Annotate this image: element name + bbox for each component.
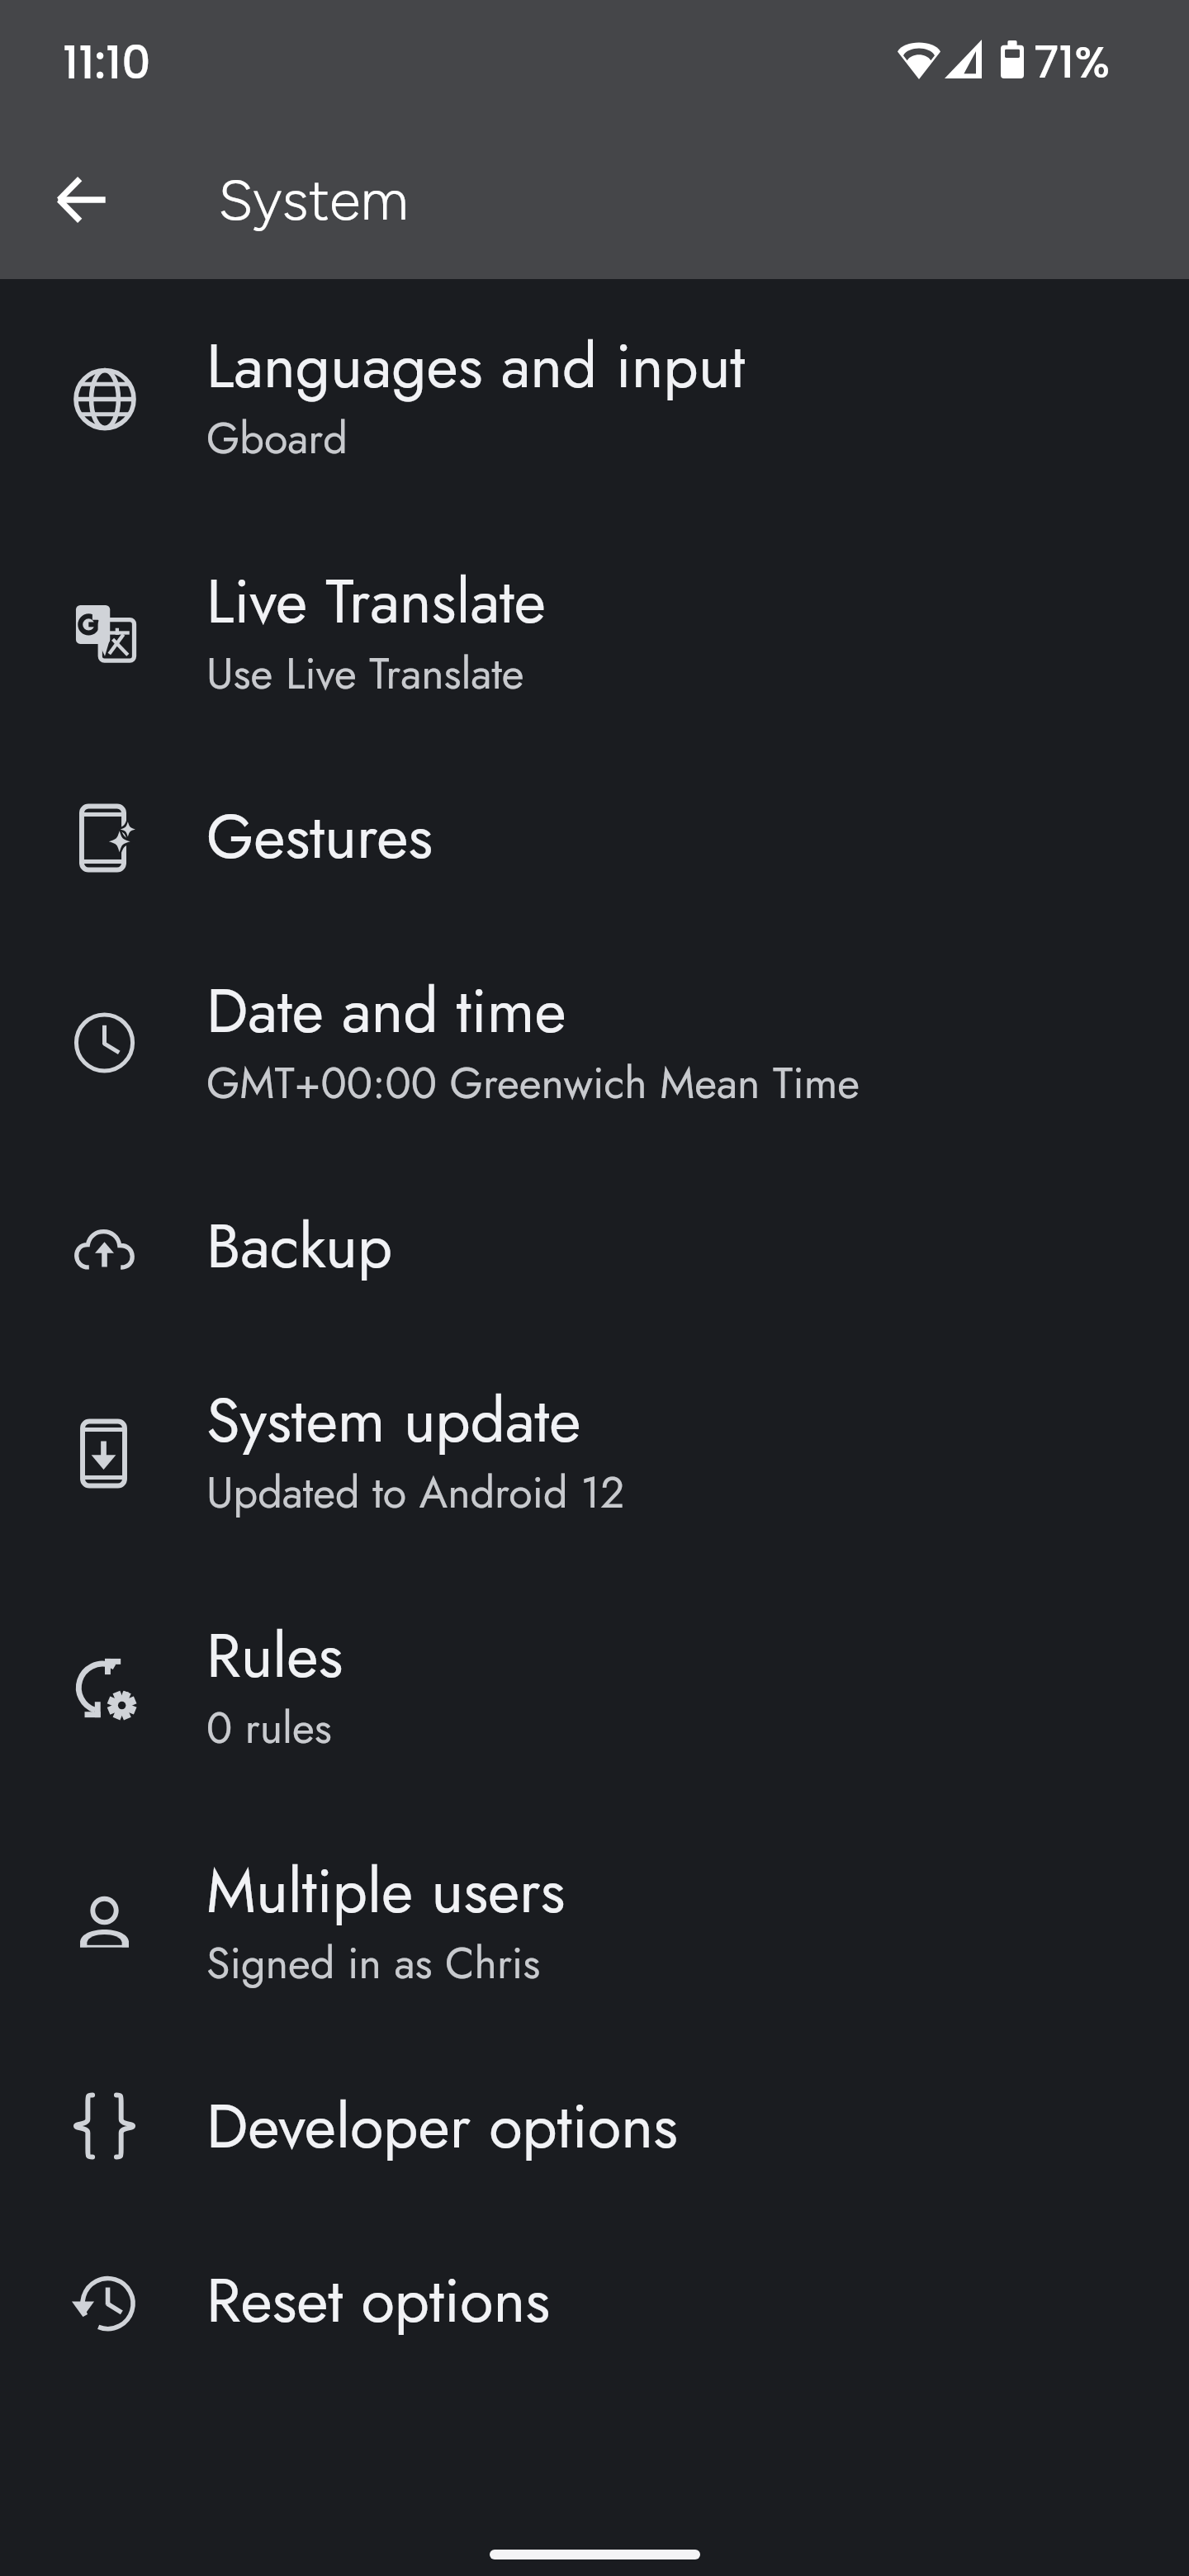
button[interactable]: Reset options <box>0 2214 1189 2388</box>
staticText: Signed in as Chris <box>206 1932 541 1994</box>
staticText: Updated to Android 12 <box>206 1461 625 1523</box>
staticText: System update <box>206 1376 581 1465</box>
staticText: Multiple users <box>206 1847 566 1935</box>
button[interactable]: Rules <box>0 1569 1189 1804</box>
button[interactable]: Languages and input <box>0 279 1189 514</box>
staticText: Date and time <box>206 967 566 1055</box>
button[interactable]: Navigate up <box>31 150 130 249</box>
staticText: 0 rules <box>206 1697 332 1759</box>
button[interactable]: Backup <box>0 1159 1189 1333</box>
staticText: Backup <box>206 1202 393 1290</box>
staticText: Developer options <box>206 2082 678 2171</box>
button[interactable]: Developer options <box>0 2039 1189 2214</box>
button[interactable]: Live Translate <box>0 514 1189 750</box>
staticText: GMT+00:00 Greenwich Mean Time <box>206 1052 860 1114</box>
button[interactable]: System update <box>0 1333 1189 1569</box>
button[interactable]: Date and time <box>0 924 1189 1159</box>
staticText: Live Translate <box>206 557 546 646</box>
staticText: 11:10 <box>63 31 151 94</box>
staticText: Gboard <box>206 407 348 469</box>
staticText: System <box>218 165 409 234</box>
staticText: Reset options <box>206 2256 551 2345</box>
staticText: 71% <box>1034 31 1111 93</box>
staticText: Use Live Translate <box>206 642 524 704</box>
staticText: Gestures <box>206 793 433 881</box>
button[interactable]: Gestures <box>0 750 1189 924</box>
staticText: Rules <box>206 1612 343 1700</box>
button[interactable]: Multiple users <box>0 1804 1189 2039</box>
staticText: Languages and input <box>206 322 746 410</box>
